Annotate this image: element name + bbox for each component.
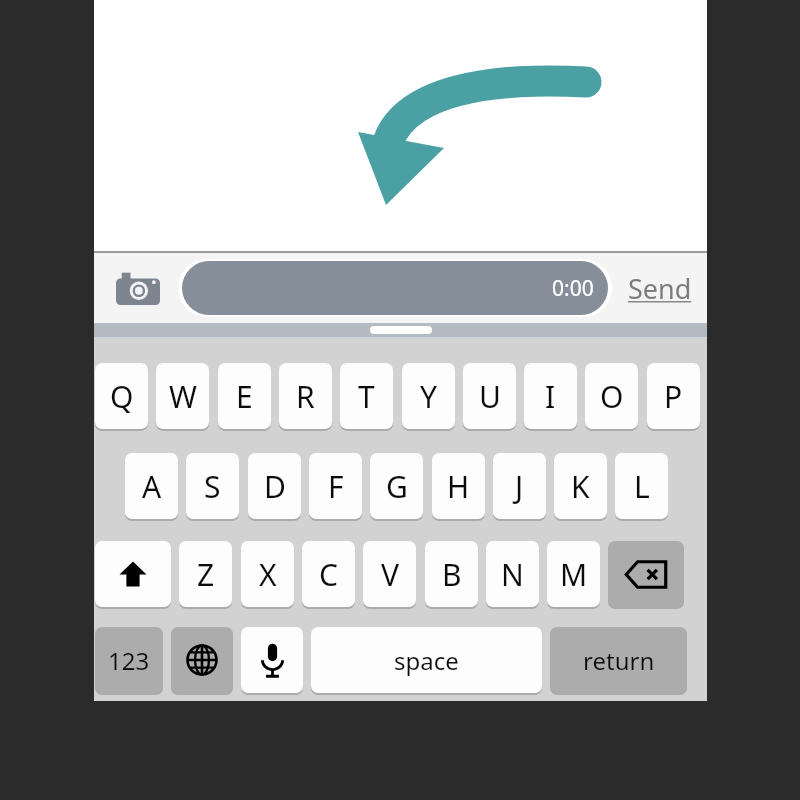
staticText: 0:00 <box>552 274 594 303</box>
staticText: space <box>394 644 459 677</box>
staticText: Y <box>420 376 437 417</box>
button[interactable]: K <box>554 453 607 519</box>
staticText: R <box>296 376 315 417</box>
button[interactable]: H <box>432 453 485 519</box>
button[interactable]: C <box>302 541 355 607</box>
staticText: Send <box>628 270 692 307</box>
staticText: F <box>328 466 344 507</box>
button[interactable]: M <box>547 541 600 607</box>
button[interactable]: U <box>463 363 516 429</box>
staticText: T <box>358 376 375 417</box>
staticText: X <box>259 554 277 595</box>
button[interactable]: V <box>363 541 416 607</box>
button[interactable]: B <box>425 541 478 607</box>
staticText: L <box>634 466 650 507</box>
staticText: C <box>319 554 338 595</box>
staticText: A <box>142 466 162 507</box>
button[interactable]: Change keyboard <box>171 627 233 693</box>
staticText: H <box>447 466 470 507</box>
button[interactable]: Shift <box>95 541 171 607</box>
button[interactable]: F <box>309 453 362 519</box>
button[interactable]: E <box>218 363 271 429</box>
staticText: W <box>169 376 197 417</box>
button[interactable]: N <box>486 541 539 607</box>
button[interactable]: Backspace <box>608 541 684 607</box>
button[interactable]: J <box>493 453 546 519</box>
button[interactable]: space <box>311 627 542 693</box>
staticText: D <box>264 466 286 507</box>
staticText: Z <box>197 554 215 595</box>
staticText: M <box>560 554 588 595</box>
button[interactable]: X <box>241 541 294 607</box>
button[interactable]: Y <box>402 363 455 429</box>
button[interactable]: S <box>186 453 239 519</box>
staticText: N <box>501 554 524 595</box>
button[interactable]: Q <box>95 363 148 429</box>
staticText: E <box>236 376 253 417</box>
button[interactable]: return <box>550 627 687 693</box>
button[interactable]: I <box>524 363 577 429</box>
button[interactable]: P <box>647 363 700 429</box>
staticText: K <box>571 466 590 507</box>
staticText: J <box>515 466 524 507</box>
button[interactable]: L <box>615 453 668 519</box>
staticText: B <box>442 554 462 595</box>
staticText: S <box>204 466 221 507</box>
button[interactable]: D <box>248 453 301 519</box>
button[interactable]: T <box>340 363 393 429</box>
button[interactable]: R <box>279 363 332 429</box>
button[interactable]: Z <box>179 541 232 607</box>
staticText: V <box>381 554 399 595</box>
staticText: return <box>583 644 655 677</box>
button[interactable]: O <box>585 363 638 429</box>
staticText: 123 <box>108 644 150 677</box>
button[interactable]: 123 <box>95 627 163 693</box>
button[interactable]: G <box>370 453 423 519</box>
button[interactable]: Camera <box>110 263 166 313</box>
button[interactable]: Dictate <box>241 627 303 693</box>
staticText: I <box>545 376 556 417</box>
staticText: U <box>479 376 501 417</box>
button[interactable]: Send <box>624 264 696 313</box>
button[interactable]: 0:00 <box>178 259 612 317</box>
staticText: Q <box>110 376 134 417</box>
button[interactable]: A <box>125 453 178 519</box>
staticText: O <box>600 376 624 417</box>
staticText: G <box>386 466 408 507</box>
button[interactable]: W <box>156 363 209 429</box>
staticText: P <box>664 376 683 417</box>
